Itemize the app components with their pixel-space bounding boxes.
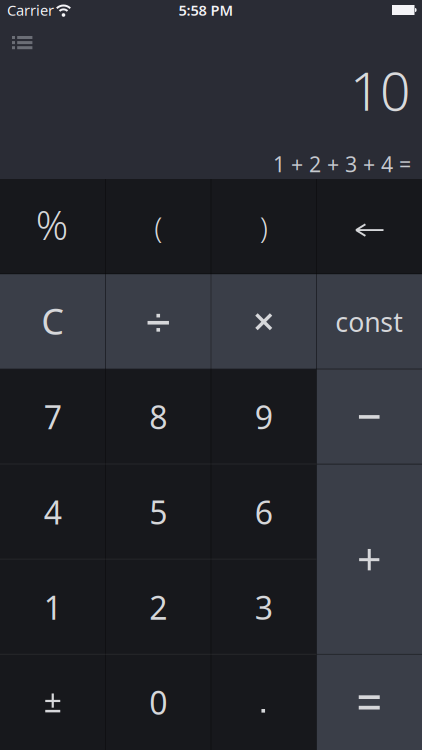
staticText: const xyxy=(335,304,403,339)
button[interactable]: ) xyxy=(211,179,316,274)
button[interactable]: Plus minus xyxy=(0,655,105,750)
button[interactable]: History xyxy=(0,20,32,49)
staticText: 5 xyxy=(149,491,167,533)
button[interactable]: ( xyxy=(105,179,211,274)
button[interactable]: C xyxy=(0,274,105,369)
button[interactable]: 6 xyxy=(211,464,316,560)
button[interactable]: 7 xyxy=(0,369,105,464)
staticText: 4 xyxy=(44,491,62,533)
staticText: 10 xyxy=(350,55,410,125)
button[interactable]: Backspace xyxy=(316,179,422,274)
button[interactable]: % xyxy=(0,179,105,274)
button[interactable]: Add xyxy=(316,464,422,655)
staticText: 2 xyxy=(149,586,167,628)
button[interactable]: 9 xyxy=(211,369,316,464)
button[interactable]: Multiply xyxy=(211,274,316,369)
staticText: C xyxy=(41,297,64,345)
button[interactable]: Subtract xyxy=(316,369,422,464)
staticText: 6 xyxy=(255,491,273,533)
staticText: 7 xyxy=(44,396,62,438)
staticText: ) xyxy=(260,208,268,247)
button[interactable]: 1 xyxy=(0,560,105,655)
staticText: 0 xyxy=(149,681,167,724)
staticText: 3 xyxy=(255,586,273,628)
button[interactable]: 5 xyxy=(105,464,211,560)
staticText: 9 xyxy=(255,396,273,438)
staticText: ( xyxy=(154,208,162,247)
button[interactable]: 3 xyxy=(211,560,316,655)
staticText: 1 xyxy=(44,586,62,628)
button[interactable]: Equals xyxy=(316,655,422,750)
button[interactable]: 4 xyxy=(0,464,105,560)
button[interactable]: 8 xyxy=(105,369,211,464)
button[interactable]: Divide xyxy=(105,274,211,369)
button[interactable]: const xyxy=(316,274,422,369)
staticText: 5:58 PM xyxy=(178,0,233,20)
staticText: 1 + 2 + 3 + 4 = xyxy=(273,150,411,178)
staticText: 8 xyxy=(149,396,167,438)
staticText: Carrier xyxy=(7,0,54,20)
button[interactable]: Decimal point xyxy=(211,655,316,750)
button[interactable]: 2 xyxy=(105,560,211,655)
staticText: % xyxy=(36,198,68,251)
button[interactable]: 0 xyxy=(105,655,211,750)
